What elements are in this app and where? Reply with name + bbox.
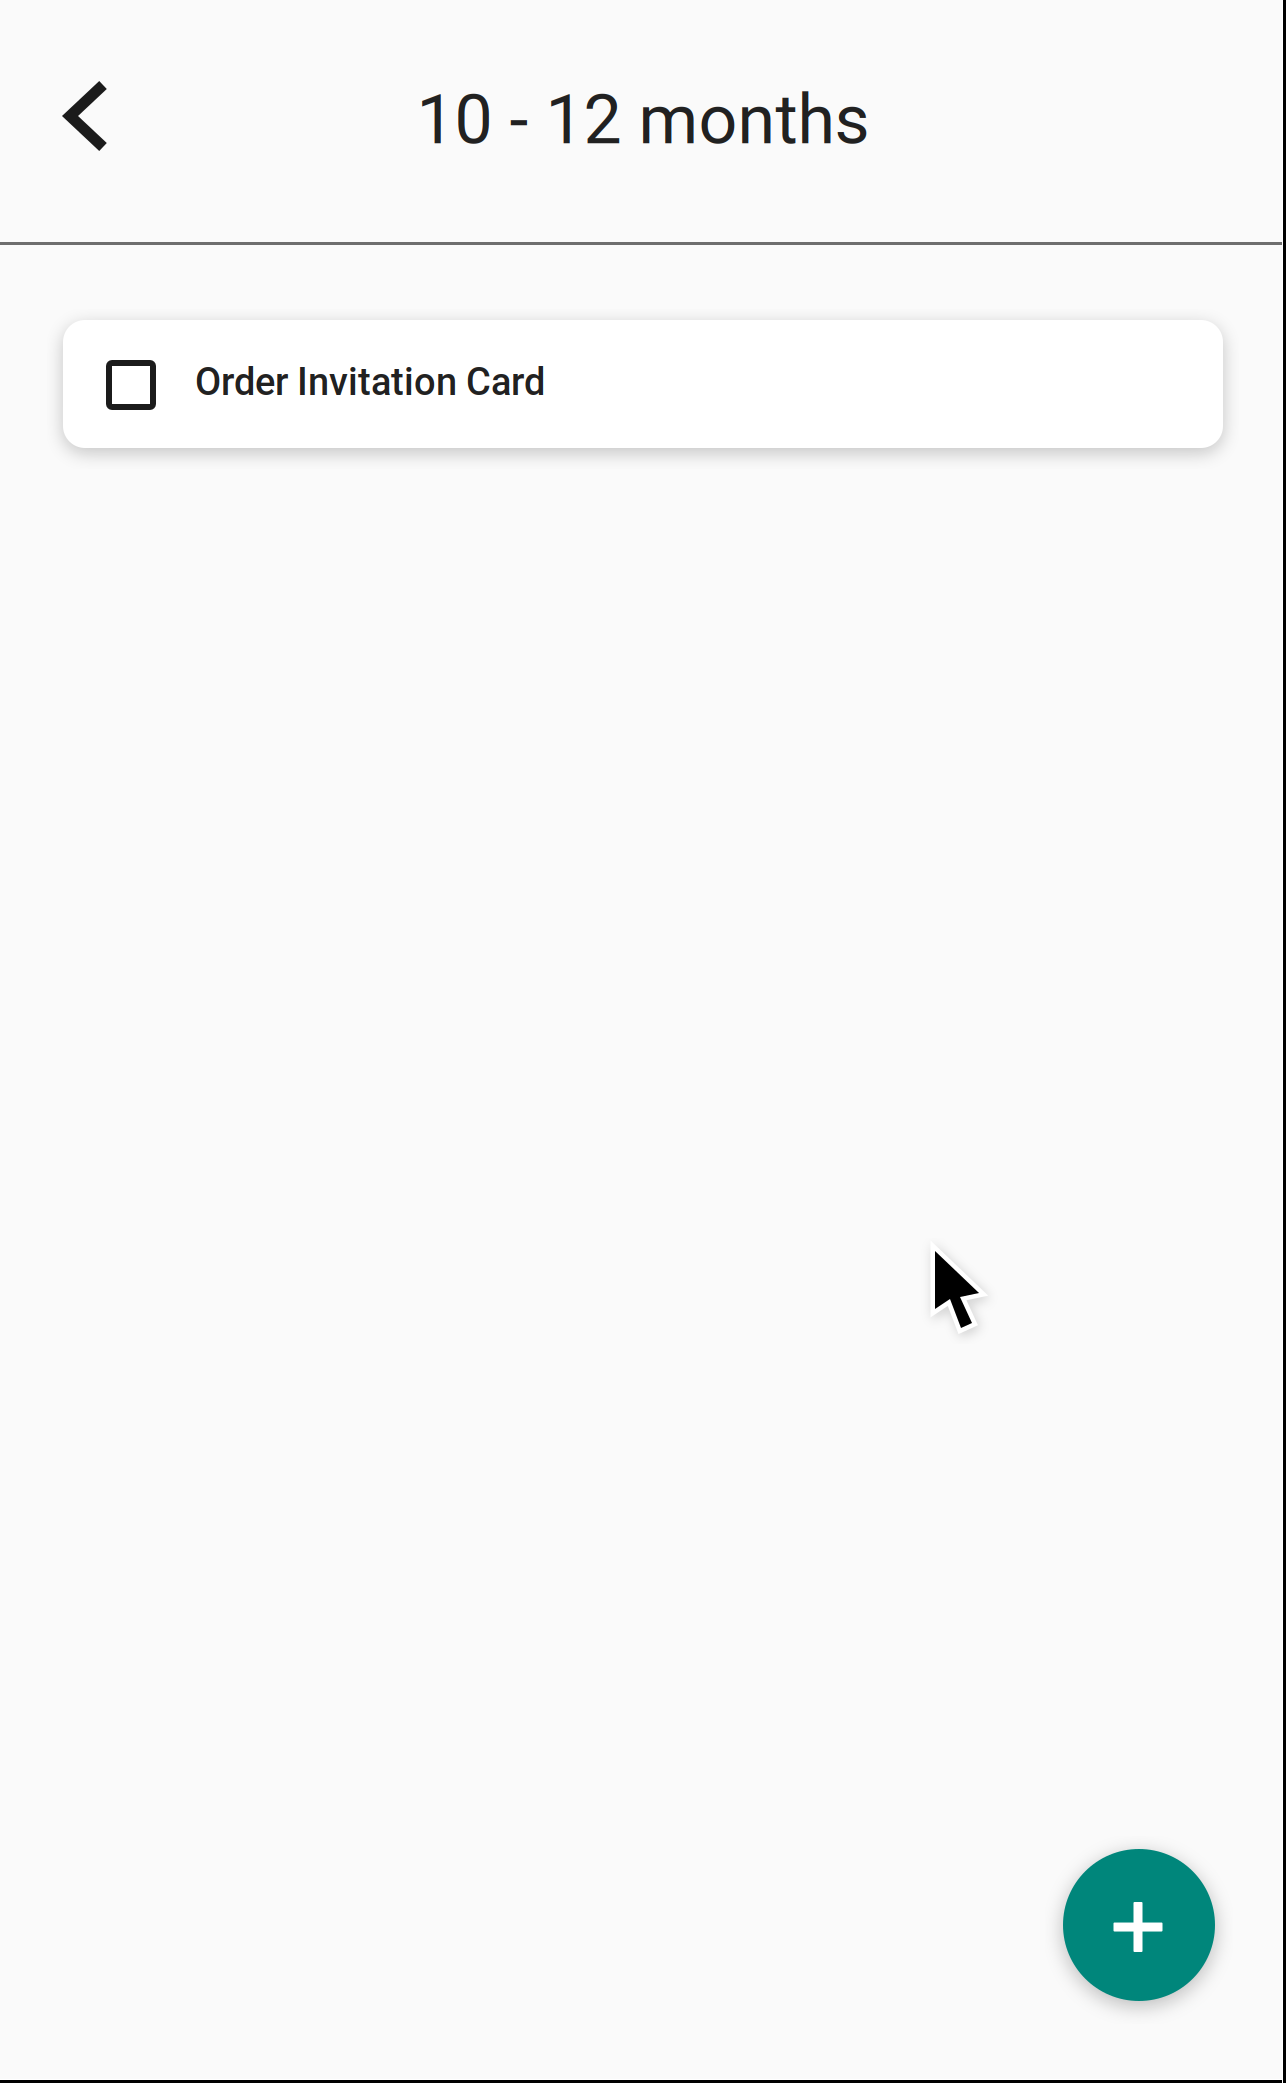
staticText: 10 - 12 months — [416, 80, 869, 160]
button[interactable]: Back — [29, 58, 145, 174]
button[interactable]: Add item — [1063, 1849, 1215, 2001]
button[interactable]: Order Invitation Card — [63, 320, 1223, 448]
staticText: Order Invitation Card — [195, 360, 545, 404]
